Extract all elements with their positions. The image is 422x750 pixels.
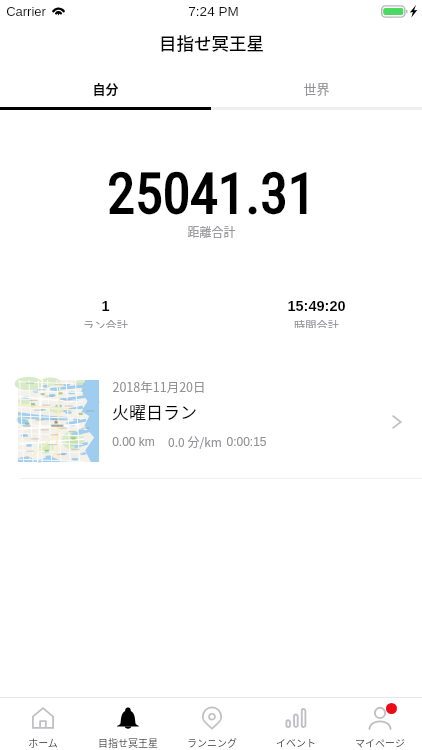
staticText: Carrier <box>6 4 46 19</box>
staticText: 1 <box>101 298 110 314</box>
staticText: マイページ <box>355 735 405 749</box>
button[interactable]: 世界 <box>211 71 422 107</box>
button[interactable]: Home <box>0 698 85 750</box>
button[interactable]: My Page <box>338 698 422 750</box>
button[interactable]: 自分 <box>0 71 211 107</box>
button[interactable]: Running <box>170 698 254 750</box>
button[interactable]: 2018年11月20日 <box>0 372 422 478</box>
staticText: 7:24 PM <box>188 4 239 19</box>
staticText: 火曜日ラン <box>112 399 197 423</box>
staticText: 25041.31 <box>107 161 316 227</box>
staticText: 目指せ冥王星 <box>159 30 264 55</box>
staticText: 0.0 分/km <box>168 433 222 450</box>
staticText: ホーム <box>28 735 58 749</box>
staticText: 時間合計 <box>294 317 339 328</box>
button[interactable]: Aim for Pluto <box>85 698 170 750</box>
staticText: 世界 <box>303 79 330 98</box>
staticText: 0.00 km <box>112 435 155 448</box>
staticText: 15:49:20 <box>287 298 346 314</box>
staticText: 自分 <box>92 79 119 98</box>
staticText: 2018年11月20日 <box>112 377 206 395</box>
staticText: 距離合計 <box>187 223 236 240</box>
staticText: ランニング <box>187 735 237 749</box>
staticText: イベント <box>276 735 316 749</box>
staticText: 目指せ冥王星 <box>98 735 158 749</box>
staticText: 0:00:15 <box>226 435 267 448</box>
staticText: ラン合計 <box>83 317 128 328</box>
button[interactable]: Events <box>254 698 338 750</box>
